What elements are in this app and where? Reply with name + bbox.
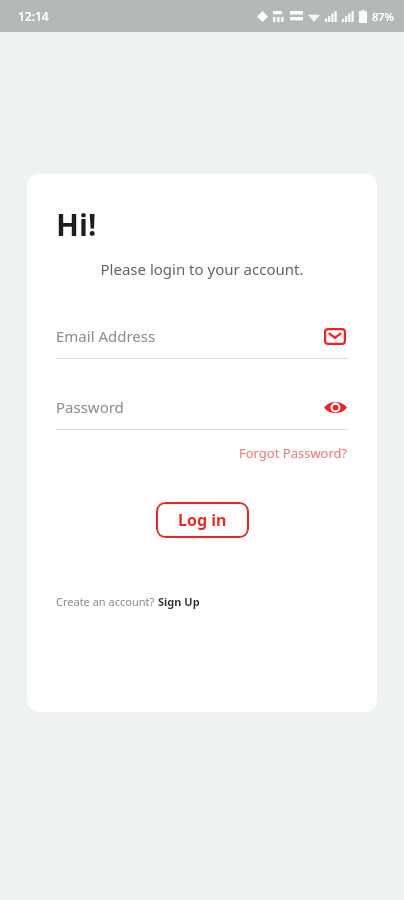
staticText: Password xyxy=(56,397,322,417)
button[interactable]: Email xyxy=(322,323,348,349)
staticText: 12:14 xyxy=(18,8,49,24)
staticText: 87% xyxy=(372,9,394,24)
staticText: Log in xyxy=(178,509,227,531)
button[interactable]: Password xyxy=(56,394,348,420)
staticText: Hi! xyxy=(56,204,97,245)
staticText: Email Address xyxy=(56,326,322,346)
button[interactable]: Forgot Password? xyxy=(239,442,348,464)
staticText: Sign Up xyxy=(158,594,200,609)
staticText: Create an account? xyxy=(56,594,158,609)
button[interactable]: Log in xyxy=(156,502,249,538)
button[interactable]: Email Address xyxy=(56,323,348,349)
button[interactable]: Show password xyxy=(322,394,348,420)
button[interactable]: Create an account? xyxy=(56,594,200,609)
staticText: Please login to your account. xyxy=(56,259,348,279)
